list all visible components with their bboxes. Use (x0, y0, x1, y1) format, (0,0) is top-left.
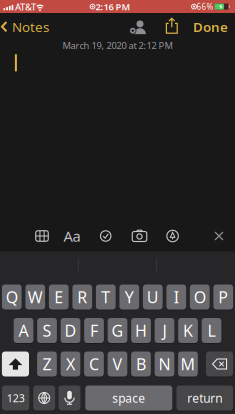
staticText: space (112, 390, 145, 406)
button[interactable]: R (72, 284, 92, 309)
button[interactable]: G (108, 318, 127, 343)
button[interactable]: 123 (2, 385, 29, 410)
staticText: return (187, 390, 222, 406)
staticText: J (162, 320, 166, 341)
button[interactable]: Aa (63, 226, 80, 246)
button[interactable]: space (85, 385, 172, 410)
button[interactable]: S (37, 318, 57, 343)
staticText: N (158, 353, 170, 375)
staticText: F (90, 320, 98, 341)
staticText: A (18, 320, 28, 341)
button[interactable] (2, 351, 29, 376)
button[interactable]: Done (193, 18, 228, 36)
staticText: March 19, 2020 at 2:12 PM (62, 39, 172, 52)
staticText: E (54, 286, 63, 308)
staticText: P (218, 286, 228, 308)
button[interactable] (132, 230, 147, 242)
staticText: H (135, 320, 147, 341)
button[interactable]: N (155, 351, 174, 376)
button[interactable]: Q (2, 284, 22, 309)
button[interactable]: T (96, 284, 116, 309)
button[interactable]: D (61, 318, 80, 343)
staticText: Y (125, 286, 134, 308)
button[interactable] (100, 230, 111, 242)
button[interactable] (166, 18, 178, 34)
button[interactable] (166, 230, 179, 242)
button[interactable] (36, 231, 48, 241)
button[interactable] (33, 385, 55, 410)
staticText: O (194, 286, 206, 308)
button[interactable]: O (190, 284, 210, 309)
button[interactable]: F (84, 318, 104, 343)
staticText: R (77, 286, 87, 308)
staticText: 66% (196, 1, 213, 12)
button[interactable]: M (178, 351, 198, 376)
button[interactable]: H (131, 318, 151, 343)
button[interactable]: P (213, 284, 233, 309)
staticText: Z (42, 353, 51, 375)
staticText: Aa (63, 226, 80, 246)
staticText: 123 (7, 391, 25, 405)
button[interactable]: return (176, 385, 233, 410)
button[interactable]: Notes (1, 14, 49, 40)
button[interactable] (214, 231, 223, 240)
staticText: X (66, 353, 75, 375)
staticText: AT&T (15, 1, 36, 13)
staticText: 2:16 PM (95, 0, 130, 13)
button[interactable] (206, 351, 233, 376)
staticText: V (112, 353, 122, 375)
button[interactable] (129, 19, 148, 34)
staticText: Notes (12, 18, 49, 36)
button[interactable]: I (166, 284, 186, 309)
button[interactable]: E (49, 284, 69, 309)
button[interactable]: W (25, 284, 45, 309)
staticText: U (147, 286, 159, 308)
staticText: S (42, 320, 51, 341)
button[interactable]: V (108, 351, 127, 376)
staticText: L (207, 320, 215, 341)
button[interactable]: B (131, 351, 151, 376)
button[interactable]: A (14, 318, 33, 343)
button[interactable]: Z (37, 351, 57, 376)
button[interactable]: K (178, 318, 198, 343)
staticText: M (180, 353, 195, 375)
button[interactable] (58, 385, 80, 410)
staticText: Q (6, 286, 18, 308)
staticText: D (64, 320, 76, 341)
staticText: Done (193, 18, 228, 36)
button[interactable]: J (155, 318, 174, 343)
staticText: G (111, 320, 123, 341)
button[interactable]: C (84, 351, 104, 376)
staticText: T (101, 286, 110, 308)
staticText: I (174, 286, 179, 308)
staticText: C (89, 353, 99, 375)
button[interactable]: Y (119, 284, 139, 309)
button[interactable]: X (61, 351, 80, 376)
staticText: K (183, 320, 193, 341)
button[interactable]: L (202, 318, 221, 343)
staticText: B (136, 353, 146, 375)
staticText: W (28, 286, 43, 308)
button[interactable]: U (143, 284, 163, 309)
